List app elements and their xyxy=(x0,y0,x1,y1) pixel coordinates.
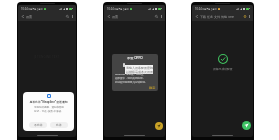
staticText: 不允许 xyxy=(34,123,43,127)
staticText: 设置 xyxy=(112,15,119,19)
staticText: 10:24 ✉▪⚑▪♫▪✉ xyxy=(195,7,217,11)
staticText: 确定 xyxy=(149,86,156,90)
staticText: 10:24 ✉▪⚑▪♫▪✉ xyxy=(107,7,129,11)
button[interactable]: Back xyxy=(194,13,199,20)
button[interactable]: Search xyxy=(65,13,70,20)
button[interactable]: More options xyxy=(247,13,252,20)
button[interactable]: Send xyxy=(155,122,163,130)
staticText: 下载 任务 文件 传输 记录 xyxy=(200,15,235,19)
staticText: 可能包括提醒、通知和图标 标记，可在"设置"中修改。 xyxy=(34,106,64,113)
button[interactable]: Send xyxy=(242,121,251,130)
staticText: Requires 请稍候，系统正 在配置中，请勿关闭应用， 此过程可能需要几分钟… xyxy=(115,72,148,83)
button[interactable]: Back xyxy=(20,13,25,20)
button[interactable]: More options xyxy=(70,13,75,20)
staticText: 10:24 ✉▪⚑▪♫▪✉ xyxy=(21,7,43,11)
staticText: 允许 xyxy=(56,123,62,127)
button[interactable]: 允许 xyxy=(50,122,68,128)
button[interactable]: 不允许 xyxy=(29,122,47,128)
button[interactable]: More options xyxy=(159,13,164,20)
button[interactable]: Search xyxy=(154,13,159,20)
button[interactable]: Warning xyxy=(242,13,247,20)
button[interactable]: Back xyxy=(106,13,111,20)
staticText: 设置 xyxy=(26,15,33,19)
button[interactable]: 确定 xyxy=(149,86,156,90)
staticText: 配置 OPPO xyxy=(112,56,158,60)
staticText: 请输入设备配置密码 以继续完成本次设置 xyxy=(126,66,153,74)
staticText: 是否允许"Neapline"发送通知 xyxy=(29,100,68,104)
staticText: 设备已成功配置 xyxy=(213,67,233,71)
